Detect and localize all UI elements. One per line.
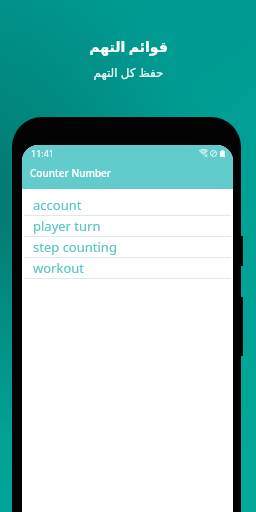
other: Do not disturb: [210, 150, 217, 157]
staticText: step counting: [33, 238, 117, 256]
staticText: قوائم التهم: [89, 37, 168, 56]
staticText: 11:41: [31, 147, 55, 159]
other: Wifi off: [199, 149, 208, 157]
staticText: Counter Number: [30, 166, 112, 180]
button[interactable]: step counting: [22, 237, 233, 258]
button[interactable]: workout: [22, 258, 233, 279]
staticText: workout: [33, 259, 84, 277]
staticText: حفظ كل التهم: [93, 64, 164, 80]
staticText: player turn: [33, 217, 101, 235]
other: Battery: [220, 150, 225, 157]
button[interactable]: account: [22, 195, 233, 216]
button[interactable]: player turn: [22, 216, 233, 237]
staticText: account: [33, 196, 82, 214]
